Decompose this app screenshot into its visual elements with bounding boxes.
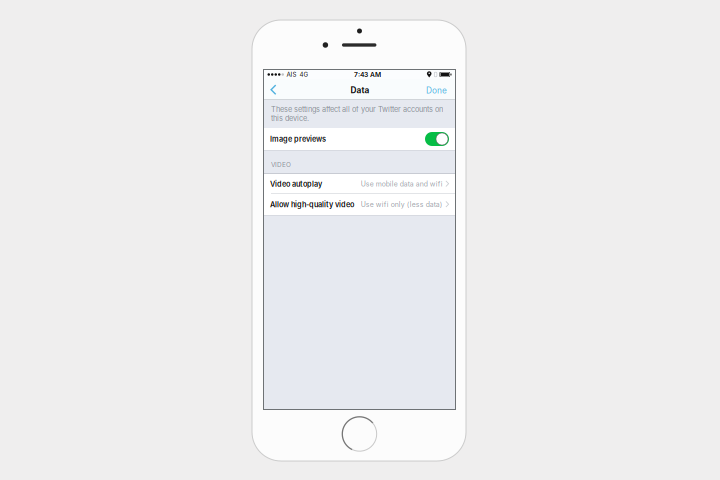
staticText: Use mobile data and wifi — [361, 180, 443, 188]
staticText: 7:43 AM — [354, 70, 381, 79]
staticText: VIDEO — [271, 161, 291, 168]
button[interactable]: Done — [426, 83, 447, 95]
button[interactable]: Allow high-quality video — [264, 194, 455, 215]
staticText: AIS — [286, 71, 296, 78]
staticText: These settings affect all of your Twitte… — [271, 105, 443, 123]
staticText: 4G — [299, 71, 308, 78]
staticText: Use wifi only (less data) — [361, 200, 443, 209]
staticText: Allow high-quality video — [270, 200, 354, 209]
button[interactable]: Back — [267, 81, 279, 97]
staticText: Done — [426, 85, 447, 95]
button[interactable]: Image previews — [264, 128, 455, 150]
staticText: Data — [350, 85, 369, 95]
staticText: Video autoplay — [270, 180, 322, 188]
button[interactable]: Video autoplay — [264, 174, 455, 194]
staticText: Image previews — [270, 135, 326, 143]
